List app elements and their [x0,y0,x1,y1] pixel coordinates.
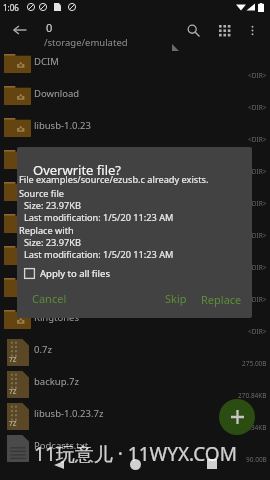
staticText: 275.00B [242,359,267,368]
staticText: Size: 23.97KB [24,199,81,212]
staticText: Replace [201,292,242,307]
button[interactable]: Replace [201,292,242,307]
button[interactable]: Pictures [0,238,270,270]
staticText: File examples/source/ezusb.c already exi… [19,173,209,186]
staticText: 1:06 [3,2,19,13]
staticText: DCIM [34,55,59,68]
staticText: <DIR> [248,231,267,240]
staticText: Ringtones [34,311,80,324]
button[interactable]: Back [6,16,34,44]
staticText: Download [34,87,80,100]
staticText: 0.7z [34,343,52,356]
button[interactable]: Podcasts [0,270,270,302]
button[interactable]: More options [239,17,265,43]
button[interactable]: 7Z [0,366,270,398]
staticText: Size: 23.97KB [24,236,81,249]
staticText: <DIR> [248,199,267,208]
button[interactable]: Music [0,174,270,206]
staticText: <DIR> [248,135,267,144]
staticText: libusb-1.0.23.7z [34,407,104,420]
button[interactable]: Apply to all files [24,267,110,280]
staticText: 270.84KB [238,391,267,400]
staticText: 270.34KB [238,423,267,432]
staticText: 7Z [9,419,17,428]
button[interactable]: 7Z [0,334,270,366]
staticText: <DIR> [248,167,267,176]
staticText: Last modification: 1/5/20 11:23 AM [24,248,174,261]
button[interactable]: Add [219,399,255,435]
staticText: 90.00B [246,455,267,464]
button[interactable]: Recent apps [201,453,223,475]
staticText: Last modification: 1/5/20 11:23 AM [24,211,174,224]
button[interactable]: Ringtones [0,302,270,334]
staticText: /storage/emulated [44,36,128,49]
staticText: 0 [46,20,53,35]
staticText: Cancel [32,291,67,306]
staticText: Replace with [19,224,74,237]
button[interactable]: Back [48,454,70,476]
button[interactable]: Notifications [0,206,270,238]
staticText: 11玩意儿 · 11WYX.COM [34,441,237,467]
staticText: libusb-1.0.23 [34,119,91,132]
button[interactable]: Home [124,453,146,475]
button[interactable]: Search [180,17,206,43]
button[interactable]: libusb-1.0.23 [0,110,270,142]
button[interactable]: Download [0,78,270,110]
staticText: backup.7z [34,375,79,388]
staticText: 7Z [9,355,17,364]
staticText: Source file [19,187,64,200]
staticText: Music [34,183,61,196]
button[interactable]: Podcasts.txt [0,430,270,462]
staticText: <DIR> [248,71,267,80]
staticText: Pictures [34,247,70,260]
button[interactable]: Movies [0,142,270,174]
button[interactable]: Apps [211,17,237,43]
button[interactable]: Skip [165,291,187,306]
staticText: Overwrite file? [33,161,121,179]
staticText: 7Z [9,387,17,396]
staticText: Podcasts.txt [34,439,89,452]
staticText: <DIR> [248,327,267,336]
button[interactable]: Cancel [32,291,67,306]
staticText: <DIR> [248,103,267,112]
staticText: Notifications [34,215,91,228]
staticText: <DIR> [248,263,267,272]
button[interactable]: 7Z [0,398,270,430]
staticText: Apply to all files [40,267,110,280]
staticText: Skip [165,291,187,306]
staticText: <DIR> [248,295,267,304]
button[interactable]: DCIM [0,46,270,78]
